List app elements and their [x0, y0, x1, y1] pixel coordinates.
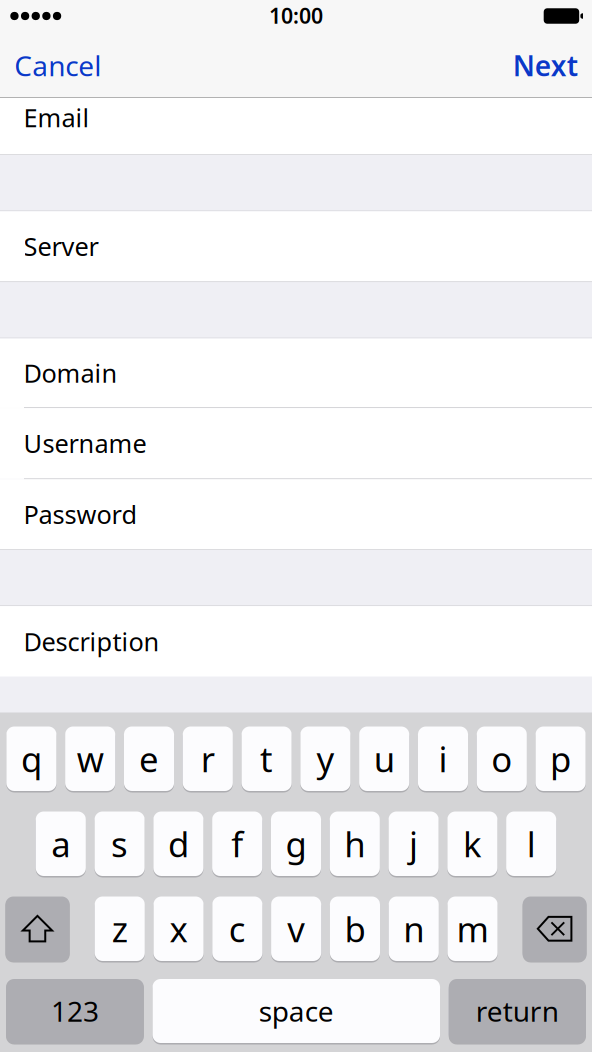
staticText: z [112, 906, 128, 952]
button[interactable]: Server [0, 211, 592, 281]
button[interactable]: Cancel [6, 36, 109, 95]
staticText: i [438, 736, 447, 782]
button[interactable]: t [241, 726, 292, 791]
button[interactable]: Next [505, 36, 586, 95]
staticText: Password [23, 497, 137, 531]
button[interactable]: d [153, 811, 203, 876]
staticText: t [260, 736, 273, 782]
button[interactable]: p [535, 726, 586, 791]
staticText: l [527, 821, 536, 867]
staticText: n [403, 906, 424, 952]
button[interactable]: f [212, 811, 262, 876]
button[interactable]: l [506, 811, 556, 876]
button[interactable]: x [153, 896, 204, 961]
button[interactable]: Description [0, 606, 592, 676]
staticText: f [231, 821, 243, 867]
staticText: h [344, 821, 365, 867]
staticText: w [77, 736, 104, 782]
button[interactable]: Username [0, 408, 592, 478]
button[interactable]: Shift [5, 896, 70, 961]
button[interactable]: Domain [0, 338, 592, 407]
button[interactable]: u [359, 726, 409, 791]
button[interactable]: y [300, 726, 350, 791]
button[interactable]: r [183, 726, 233, 791]
button[interactable]: z [95, 896, 145, 961]
button[interactable]: Email [0, 98, 592, 154]
staticText: u [374, 736, 395, 782]
staticText: v [287, 906, 305, 952]
button[interactable]: w [65, 726, 115, 791]
staticText: j [409, 821, 418, 867]
button[interactable]: c [212, 896, 262, 961]
button[interactable]: o [477, 726, 527, 791]
button[interactable]: q [6, 726, 56, 791]
staticText: q [21, 736, 42, 782]
staticText: return [476, 992, 559, 1030]
staticText: Cancel [14, 47, 101, 84]
staticText: d [168, 821, 189, 867]
staticText: c [229, 906, 246, 952]
staticText: s [111, 821, 128, 867]
staticText: o [491, 736, 512, 782]
button[interactable]: Password [0, 479, 592, 549]
staticText: g [285, 821, 306, 867]
staticText: m [457, 906, 489, 952]
button[interactable]: k [447, 811, 497, 876]
button[interactable]: j [388, 811, 439, 876]
button[interactable]: m [447, 896, 498, 961]
staticText: 10:00 [269, 1, 323, 30]
staticText: x [170, 906, 188, 952]
button[interactable]: space [153, 979, 440, 1043]
button[interactable]: h [330, 811, 380, 876]
staticText: r [201, 736, 215, 782]
staticText: a [51, 821, 70, 867]
staticText: 123 [51, 992, 99, 1030]
staticText: k [463, 821, 482, 867]
button[interactable]: g [271, 811, 321, 876]
button[interactable]: Delete [523, 896, 587, 961]
button[interactable]: v [271, 896, 321, 961]
button[interactable]: return [449, 979, 586, 1043]
button[interactable]: s [94, 811, 145, 876]
button[interactable]: i [418, 726, 468, 791]
staticText: e [139, 736, 159, 782]
staticText: Server [23, 229, 98, 263]
button[interactable]: b [330, 896, 380, 961]
button[interactable]: e [124, 726, 174, 791]
staticText: y [316, 736, 334, 782]
button[interactable]: a [36, 811, 86, 876]
staticText: Domain [23, 356, 117, 390]
staticText: p [550, 736, 571, 782]
staticText: Email [23, 101, 89, 134]
staticText: Username [23, 426, 146, 460]
button[interactable]: n [389, 896, 439, 961]
staticText: space [259, 992, 334, 1030]
staticText: Next [513, 47, 578, 84]
button[interactable]: 123 [6, 979, 144, 1043]
staticText: Description [23, 624, 159, 658]
staticText: b [344, 906, 365, 952]
